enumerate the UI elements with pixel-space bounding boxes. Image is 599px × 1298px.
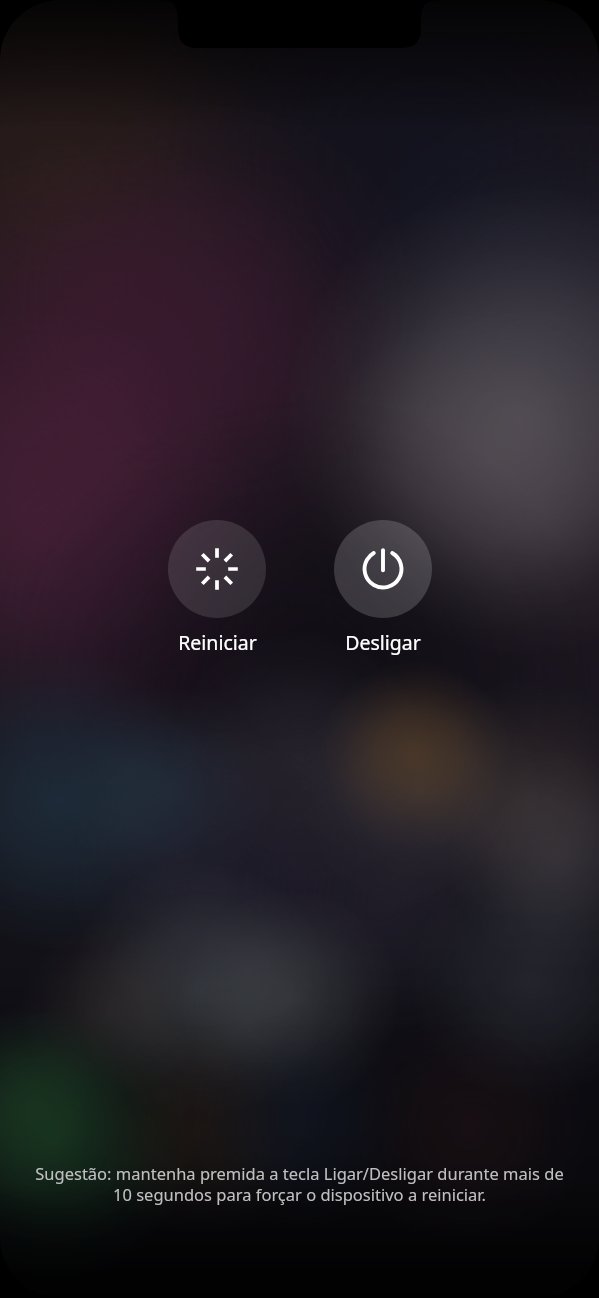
button[interactable]: Desligar bbox=[334, 520, 432, 618]
button[interactable]: Desligar bbox=[345, 629, 421, 656]
staticText: Desligar bbox=[345, 629, 421, 656]
staticText: Reiniciar bbox=[178, 629, 257, 656]
button[interactable]: Reiniciar bbox=[168, 520, 266, 618]
staticText: Sugestão: mantenha premida a tecla Ligar… bbox=[30, 1162, 569, 1206]
button[interactable]: Reiniciar bbox=[178, 629, 257, 656]
